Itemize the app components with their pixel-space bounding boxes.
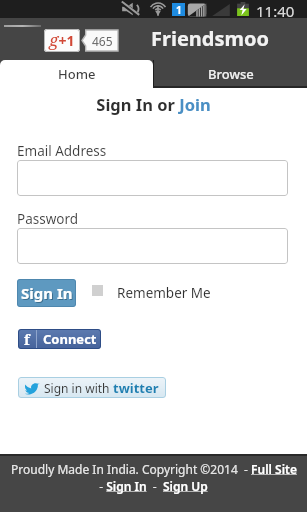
button[interactable]: Home bbox=[0, 60, 153, 88]
staticText: Remember Me bbox=[117, 284, 211, 302]
button[interactable]: g+1 bbox=[44, 29, 80, 52]
staticText: Friendsmoo bbox=[151, 25, 270, 52]
button[interactable] bbox=[17, 160, 288, 196]
button[interactable]: Sign in with bbox=[18, 377, 166, 398]
staticText: Browse bbox=[208, 65, 254, 83]
staticText: 465 bbox=[92, 33, 113, 49]
staticText: Sign In bbox=[22, 284, 74, 304]
button[interactable]: Sign In bbox=[17, 279, 76, 307]
staticText: twitter bbox=[113, 379, 159, 397]
staticText: Connect bbox=[43, 330, 97, 348]
staticText: Password bbox=[17, 210, 79, 228]
staticText: - Sign In - Sign Up bbox=[99, 478, 208, 494]
button[interactable]: Browse bbox=[154, 60, 307, 88]
staticText: Proudly Made In India. Copyright ©2014 -… bbox=[11, 461, 297, 477]
button[interactable]: f bbox=[18, 329, 101, 349]
staticText: g+1 bbox=[49, 29, 75, 51]
staticText: Sign In bbox=[21, 283, 73, 303]
button[interactable]: 465 bbox=[82, 29, 119, 52]
staticText: Sign In or Join bbox=[0, 93, 307, 115]
staticText: Home bbox=[58, 65, 96, 83]
staticText: 1 bbox=[176, 3, 182, 16]
staticText: Email Address bbox=[17, 142, 107, 160]
button[interactable] bbox=[17, 228, 288, 264]
staticText: 11:40 bbox=[256, 1, 295, 19]
staticText: Sign in with bbox=[44, 380, 113, 396]
staticText: f bbox=[24, 330, 30, 349]
